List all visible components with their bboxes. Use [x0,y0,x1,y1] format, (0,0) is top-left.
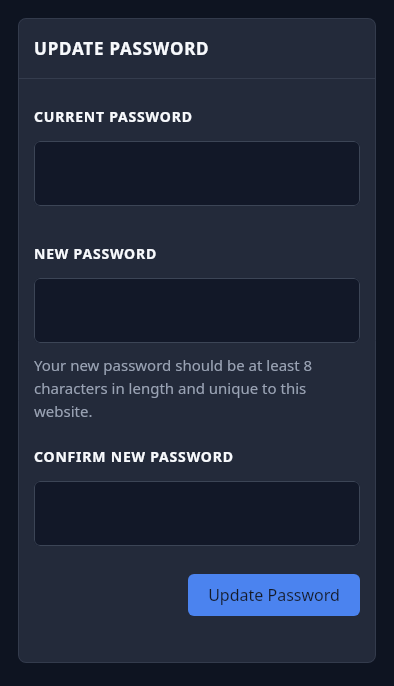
button[interactable]: Password input field [34,278,360,343]
staticText: Your new password should be at least 8 c… [34,355,360,421]
button[interactable]: Password input field [34,141,360,206]
staticText: NEW PASSWORD [34,244,158,263]
staticText: Update Password [208,584,340,606]
staticText: UPDATE PASSWORD [34,37,210,60]
button[interactable]: Password input field [34,481,360,546]
staticText: CURRENT PASSWORD [34,107,193,126]
staticText: CONFIRM NEW PASSWORD [34,447,234,466]
button[interactable]: Update Password [188,574,360,616]
